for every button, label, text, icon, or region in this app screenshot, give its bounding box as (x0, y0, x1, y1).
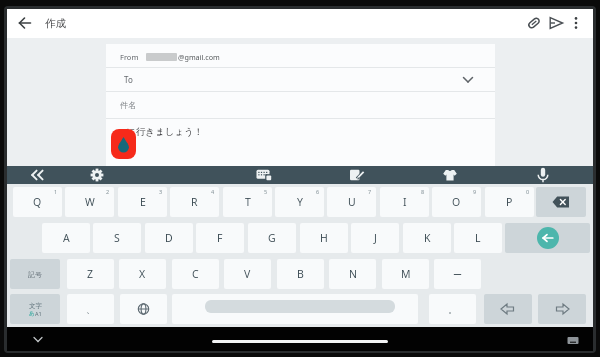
staticText: F (217, 231, 223, 245)
button[interactable]: S (93, 223, 141, 253)
button[interactable]: ー (434, 259, 481, 289)
button[interactable]: X (119, 259, 166, 289)
button[interactable]: 。 (429, 294, 476, 324)
staticText: 4 (211, 188, 215, 195)
button[interactable] (538, 294, 586, 324)
staticText: X (139, 267, 146, 281)
button[interactable]: B (277, 259, 324, 289)
staticText: U (348, 195, 356, 209)
staticText: Q (33, 195, 42, 209)
staticText: G (268, 231, 276, 245)
button[interactable] (345, 166, 369, 184)
staticText: B (297, 267, 304, 281)
staticText: A1 (35, 310, 42, 317)
staticText: D (165, 231, 173, 245)
button[interactable]: G (248, 223, 296, 253)
button[interactable]: C (172, 259, 219, 289)
staticText: M (401, 267, 411, 281)
button[interactable]: J (351, 223, 399, 253)
button[interactable]: A (42, 223, 90, 253)
staticText: To (124, 74, 133, 85)
button[interactable] (438, 166, 462, 184)
staticText: 9 (473, 188, 477, 195)
button[interactable]: H (300, 223, 348, 253)
staticText: W (85, 195, 95, 209)
button[interactable]: N (329, 259, 376, 289)
staticText: 6 (316, 188, 320, 195)
staticText: 5 (264, 188, 268, 195)
staticText: R (191, 195, 198, 209)
staticText: 件名 (120, 100, 136, 110)
button[interactable] (120, 294, 167, 324)
button[interactable] (252, 166, 276, 184)
staticText: C (192, 267, 199, 281)
button[interactable]: I (380, 187, 429, 217)
staticText: N (349, 267, 357, 281)
staticText: 記号 (28, 270, 42, 279)
staticText: K (424, 231, 431, 245)
staticText: S (114, 231, 120, 245)
staticText: に行きましょう！ (126, 126, 204, 138)
button[interactable]: Y (275, 187, 324, 217)
button[interactable]: To (106, 68, 495, 91)
button[interactable]: 記号 (10, 259, 60, 289)
button[interactable] (212, 340, 388, 343)
button[interactable] (505, 223, 590, 253)
button[interactable]: K (403, 223, 451, 253)
staticText: 2 (106, 188, 110, 195)
button[interactable]: U (327, 187, 376, 217)
button[interactable] (524, 13, 544, 33)
staticText: J (374, 231, 377, 245)
staticText: 0 (526, 188, 530, 195)
button[interactable]: T (223, 187, 272, 217)
button[interactable] (25, 166, 49, 184)
staticText: A (63, 231, 70, 245)
staticText: From (120, 52, 139, 62)
staticText: 作成 (45, 17, 66, 30)
button[interactable] (565, 335, 581, 346)
button[interactable]: Z (67, 259, 114, 289)
button[interactable]: P (485, 187, 534, 217)
staticText: 8 (421, 188, 425, 195)
staticText: 。 (448, 304, 457, 315)
button[interactable]: 件名 (106, 92, 495, 118)
staticText: V (244, 267, 251, 281)
staticText: Y (297, 195, 303, 209)
button[interactable]: W (65, 187, 114, 217)
button[interactable] (484, 294, 532, 324)
button[interactable] (111, 129, 136, 159)
staticText: 7 (368, 188, 372, 195)
button[interactable]: R (170, 187, 219, 217)
staticText: O (452, 195, 461, 209)
button[interactable]: 文字 (10, 294, 60, 324)
button[interactable]: E (118, 187, 167, 217)
staticText: ー (453, 269, 462, 280)
staticText: T (245, 195, 251, 209)
staticText: Z (87, 267, 94, 281)
staticText: あ (29, 310, 35, 317)
button[interactable]: O (432, 187, 481, 217)
button[interactable] (531, 166, 555, 184)
button[interactable] (16, 14, 34, 32)
button[interactable]: M (382, 259, 429, 289)
staticText: H (320, 231, 328, 245)
staticText: 、 (86, 304, 95, 315)
staticText: E (140, 195, 146, 209)
staticText: L (475, 231, 481, 245)
button[interactable] (85, 166, 109, 184)
button[interactable] (172, 294, 418, 324)
staticText: 文字 (29, 302, 42, 310)
button[interactable] (546, 13, 566, 33)
staticText: 1 (54, 188, 58, 195)
staticText: P (506, 195, 513, 209)
button[interactable]: D (145, 223, 193, 253)
button[interactable]: L (454, 223, 502, 253)
button[interactable] (536, 187, 586, 217)
button[interactable] (30, 332, 46, 346)
staticText: I (403, 195, 407, 209)
button[interactable] (568, 13, 584, 33)
button[interactable]: F (196, 223, 244, 253)
button[interactable]: V (224, 259, 271, 289)
button[interactable]: Q (13, 187, 62, 217)
